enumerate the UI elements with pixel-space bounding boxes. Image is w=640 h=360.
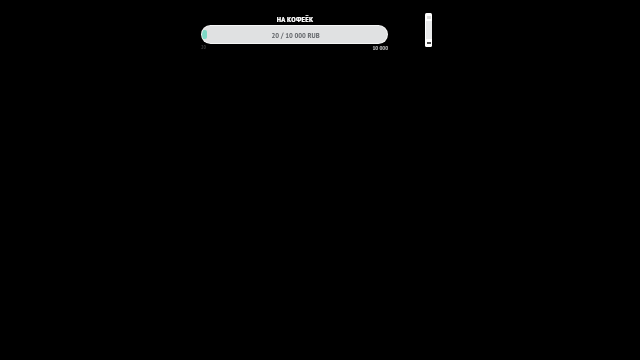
- staticText: 20: [201, 44, 206, 50]
- staticText: НА КОФЕЁК: [270, 14, 320, 24]
- button[interactable]: 20 / 10 000 RUB: [201, 25, 388, 44]
- button[interactable]: Vertical savings widget: [425, 13, 432, 47]
- staticText: 10 000: [358, 44, 388, 52]
- staticText: 20 / 10 000 RUB: [203, 30, 387, 40]
